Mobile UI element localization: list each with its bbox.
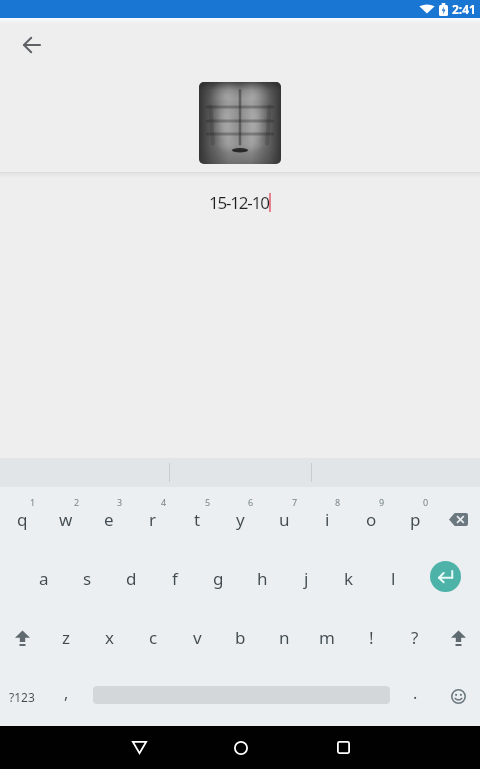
staticText: w: [59, 508, 73, 531]
staticText: 4: [161, 496, 167, 508]
button[interactable]: 6: [218, 490, 262, 549]
button[interactable]: [0, 608, 44, 667]
staticText: j: [304, 567, 309, 590]
button[interactable]: 3: [87, 490, 131, 549]
button[interactable]: [436, 667, 480, 726]
staticText: 3: [117, 496, 123, 508]
button[interactable]: n: [262, 608, 306, 667]
staticText: o: [366, 508, 377, 531]
button[interactable]: 4: [131, 490, 175, 549]
button[interactable]: 8: [305, 490, 349, 549]
button[interactable]: 9: [349, 490, 393, 549]
staticText: 6: [248, 496, 254, 508]
button[interactable]: f: [153, 549, 197, 608]
button[interactable]: v: [175, 608, 219, 667]
button[interactable]: l: [371, 549, 415, 608]
button[interactable]: j: [284, 549, 328, 608]
staticText: u: [279, 508, 290, 531]
button[interactable]: h: [240, 549, 284, 608]
button[interactable]: s: [65, 549, 109, 608]
button[interactable]: m: [305, 608, 349, 667]
button[interactable]: d: [109, 549, 153, 608]
staticText: q: [17, 508, 28, 531]
staticText: d: [126, 567, 137, 590]
button[interactable]: z: [44, 608, 88, 667]
staticText: 5: [205, 496, 211, 508]
button[interactable]: 5: [175, 490, 219, 549]
button[interactable]: .: [393, 667, 437, 726]
staticText: e: [104, 508, 114, 531]
staticText: g: [213, 567, 224, 590]
staticText: 7: [292, 496, 298, 508]
button[interactable]: 7: [262, 490, 306, 549]
button[interactable]: a: [22, 549, 66, 608]
staticText: 8: [335, 496, 341, 508]
staticText: k: [344, 567, 354, 590]
staticText: 2:41: [452, 1, 476, 17]
staticText: 9: [379, 496, 385, 508]
staticText: r: [149, 508, 157, 531]
button[interactable]: k: [327, 549, 371, 608]
button[interactable]: !: [349, 608, 393, 667]
staticText: .: [413, 682, 418, 704]
staticText: a: [39, 567, 49, 590]
staticText: s: [83, 567, 92, 590]
button[interactable]: [436, 608, 480, 667]
staticText: 1: [30, 496, 36, 508]
staticText: ?: [411, 626, 419, 649]
staticText: x: [105, 626, 114, 649]
staticText: z: [62, 626, 70, 649]
staticText: v: [193, 626, 202, 649]
button[interactable]: [198, 726, 284, 769]
staticText: 15-12-10: [209, 191, 269, 214]
staticText: ,: [64, 682, 69, 704]
staticText: h: [257, 567, 268, 590]
staticText: n: [279, 626, 290, 649]
button[interactable]: [96, 726, 182, 769]
button[interactable]: [199, 82, 281, 164]
button[interactable]: [300, 726, 386, 769]
button[interactable]: [415, 549, 480, 608]
staticText: 2: [74, 496, 80, 508]
button[interactable]: [8, 21, 56, 69]
button[interactable]: c: [131, 608, 175, 667]
staticText: !: [369, 626, 374, 649]
staticText: ?123: [9, 689, 35, 705]
staticText: l: [391, 567, 396, 590]
button[interactable]: 1: [0, 490, 44, 549]
button[interactable]: 2: [44, 490, 88, 549]
button[interactable]: [436, 490, 480, 549]
staticText: b: [235, 626, 246, 649]
staticText: c: [149, 626, 158, 649]
button[interactable]: ?: [393, 608, 437, 667]
staticText: p: [410, 508, 421, 531]
staticText: m: [319, 626, 335, 649]
staticText: i: [325, 508, 330, 531]
staticText: f: [172, 567, 178, 590]
button[interactable]: x: [87, 608, 131, 667]
staticText: 0: [423, 496, 429, 508]
button[interactable]: ?123: [0, 667, 44, 726]
button[interactable]: 0: [393, 490, 437, 549]
staticText: t: [194, 508, 201, 531]
staticText: y: [236, 508, 245, 531]
button[interactable]: ,: [44, 667, 88, 726]
button[interactable]: g: [196, 549, 240, 608]
button[interactable]: b: [218, 608, 262, 667]
